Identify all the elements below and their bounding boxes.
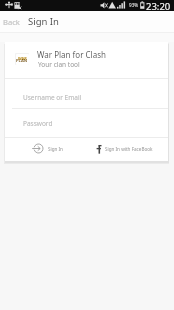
button[interactable]: Sign In with FaceBook: [93, 140, 156, 157]
staticText: Username or Email: [23, 93, 82, 102]
staticText: 93%: [129, 2, 139, 8]
button[interactable]: Sign In: [30, 140, 66, 157]
staticText: WAR: [18, 56, 27, 61]
staticText: Sign In: [28, 15, 59, 28]
staticText: 23:20: [146, 0, 171, 11]
staticText: War Plan for Clash: [37, 49, 106, 60]
other: Sign In with FaceBook: [96, 143, 102, 154]
staticText: PLAN: [16, 58, 28, 64]
staticText: Back: [3, 17, 20, 27]
other: Sign In: [33, 143, 44, 154]
staticText: Sign In: [48, 146, 63, 152]
staticText: Your clan tool: [38, 60, 80, 69]
button[interactable]: Back: [0, 14, 22, 30]
staticText: Sign In with FaceBook: [105, 146, 153, 152]
staticText: Password: [23, 119, 53, 128]
